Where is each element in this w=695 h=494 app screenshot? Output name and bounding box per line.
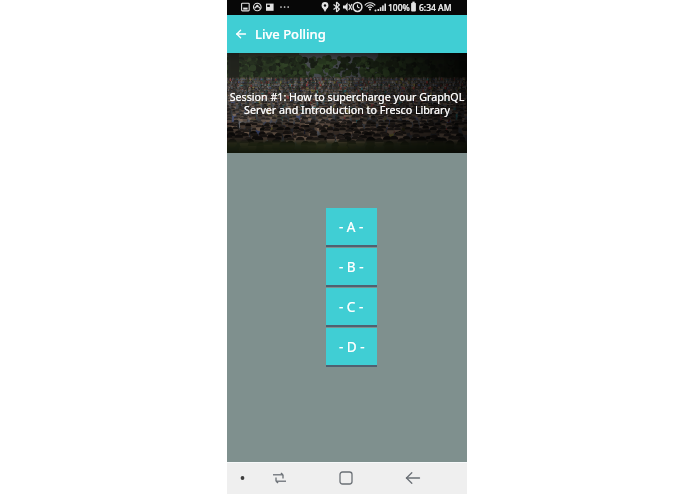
button[interactable]: Back bbox=[397, 462, 429, 494]
staticText: - A - bbox=[339, 218, 364, 236]
staticText: - B - bbox=[339, 258, 364, 276]
staticText: - C - bbox=[339, 298, 364, 316]
button[interactable]: Back bbox=[227, 15, 253, 53]
button[interactable]: Menu bbox=[230, 462, 255, 494]
button[interactable]: - C - bbox=[326, 288, 377, 327]
button[interactable]: Switch apps bbox=[263, 462, 296, 494]
staticText: Live Polling bbox=[255, 25, 326, 43]
staticText: - D - bbox=[339, 338, 365, 356]
button[interactable]: Session #1: How to supercharge your Grap… bbox=[227, 53, 467, 153]
button[interactable]: - B - bbox=[326, 248, 377, 287]
button[interactable]: - A - bbox=[326, 208, 377, 247]
button[interactable]: Recents bbox=[330, 462, 362, 494]
staticText: 100% bbox=[388, 2, 410, 14]
staticText: Session #1: How to supercharge your Grap… bbox=[227, 90, 467, 117]
staticText: 6:34 AM bbox=[419, 2, 452, 14]
button[interactable]: - D - bbox=[326, 328, 377, 367]
